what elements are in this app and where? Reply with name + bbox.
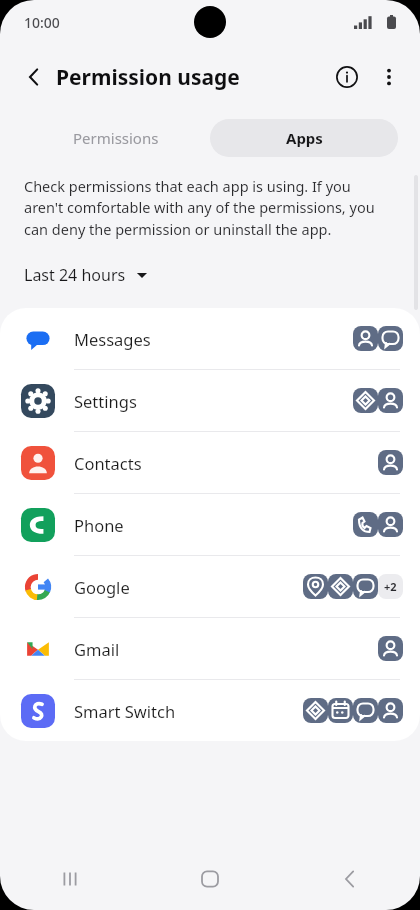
button[interactable]: Settings [0, 370, 420, 431]
staticText: Google [74, 576, 130, 598]
button[interactable]: Google [0, 556, 420, 617]
button[interactable]: Permissions [22, 119, 210, 157]
button[interactable]: More options [368, 56, 410, 98]
button[interactable]: Back [14, 57, 54, 97]
staticText: Phone [74, 514, 124, 536]
button[interactable]: Phone [0, 494, 420, 555]
button[interactable]: Gmail [0, 618, 420, 679]
button[interactable]: Contacts [0, 432, 420, 493]
button[interactable]: Recents [0, 848, 140, 910]
button[interactable]: Messages [0, 308, 420, 369]
staticText: 10:00 [24, 13, 60, 32]
staticText: Settings [74, 390, 137, 412]
staticText: Contacts [74, 452, 142, 474]
staticText: Permission usage [56, 63, 240, 92]
button[interactable]: Apps [210, 119, 398, 157]
staticText: +2 [384, 579, 397, 594]
button[interactable]: Last 24 hours [22, 260, 148, 290]
staticText: Apps [286, 128, 323, 148]
staticText: Last 24 hours [24, 264, 126, 286]
staticText: Check permissions that each app is using… [24, 176, 392, 240]
button[interactable]: Information [326, 56, 368, 98]
staticText: Smart Switch [74, 700, 176, 722]
staticText: Gmail [74, 638, 120, 660]
button[interactable]: Home [140, 848, 280, 910]
staticText: Permissions [73, 128, 159, 148]
staticText: Messages [74, 328, 151, 350]
button[interactable]: Back [280, 848, 420, 910]
button[interactable]: Smart Switch [0, 680, 420, 741]
